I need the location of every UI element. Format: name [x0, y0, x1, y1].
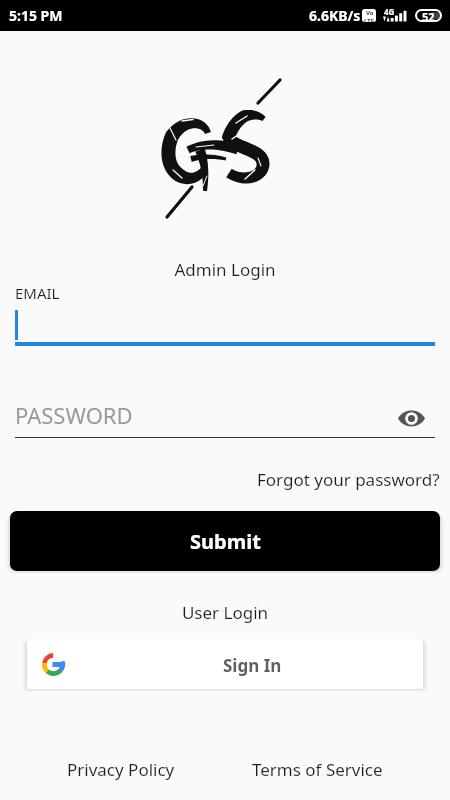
staticText: 5:15 PM — [9, 6, 63, 25]
staticText: EMAIL — [15, 283, 60, 303]
button[interactable]: Forgot your password? — [257, 468, 450, 491]
staticText: 6.6KB/s — [309, 6, 361, 25]
staticText: LTE — [364, 17, 375, 22]
button[interactable]: Sign In — [27, 639, 423, 689]
button[interactable]: Submit — [10, 511, 440, 571]
button[interactable]: Show password — [392, 404, 430, 432]
staticText: PASSWORD — [15, 400, 133, 430]
button[interactable]: Privacy Policy — [67, 758, 175, 781]
button[interactable]: Terms of Service — [252, 758, 383, 781]
staticText: Sign In — [223, 654, 282, 677]
button[interactable]: Password field — [15, 400, 435, 438]
staticText: 4G — [384, 6, 395, 17]
staticText: Admin Login — [0, 258, 450, 281]
staticText: 52 — [422, 9, 435, 22]
staticText: Submit — [190, 528, 261, 555]
staticText: User Login — [0, 601, 450, 624]
button[interactable]: Email field — [15, 305, 435, 346]
staticText: Vo — [366, 9, 374, 17]
